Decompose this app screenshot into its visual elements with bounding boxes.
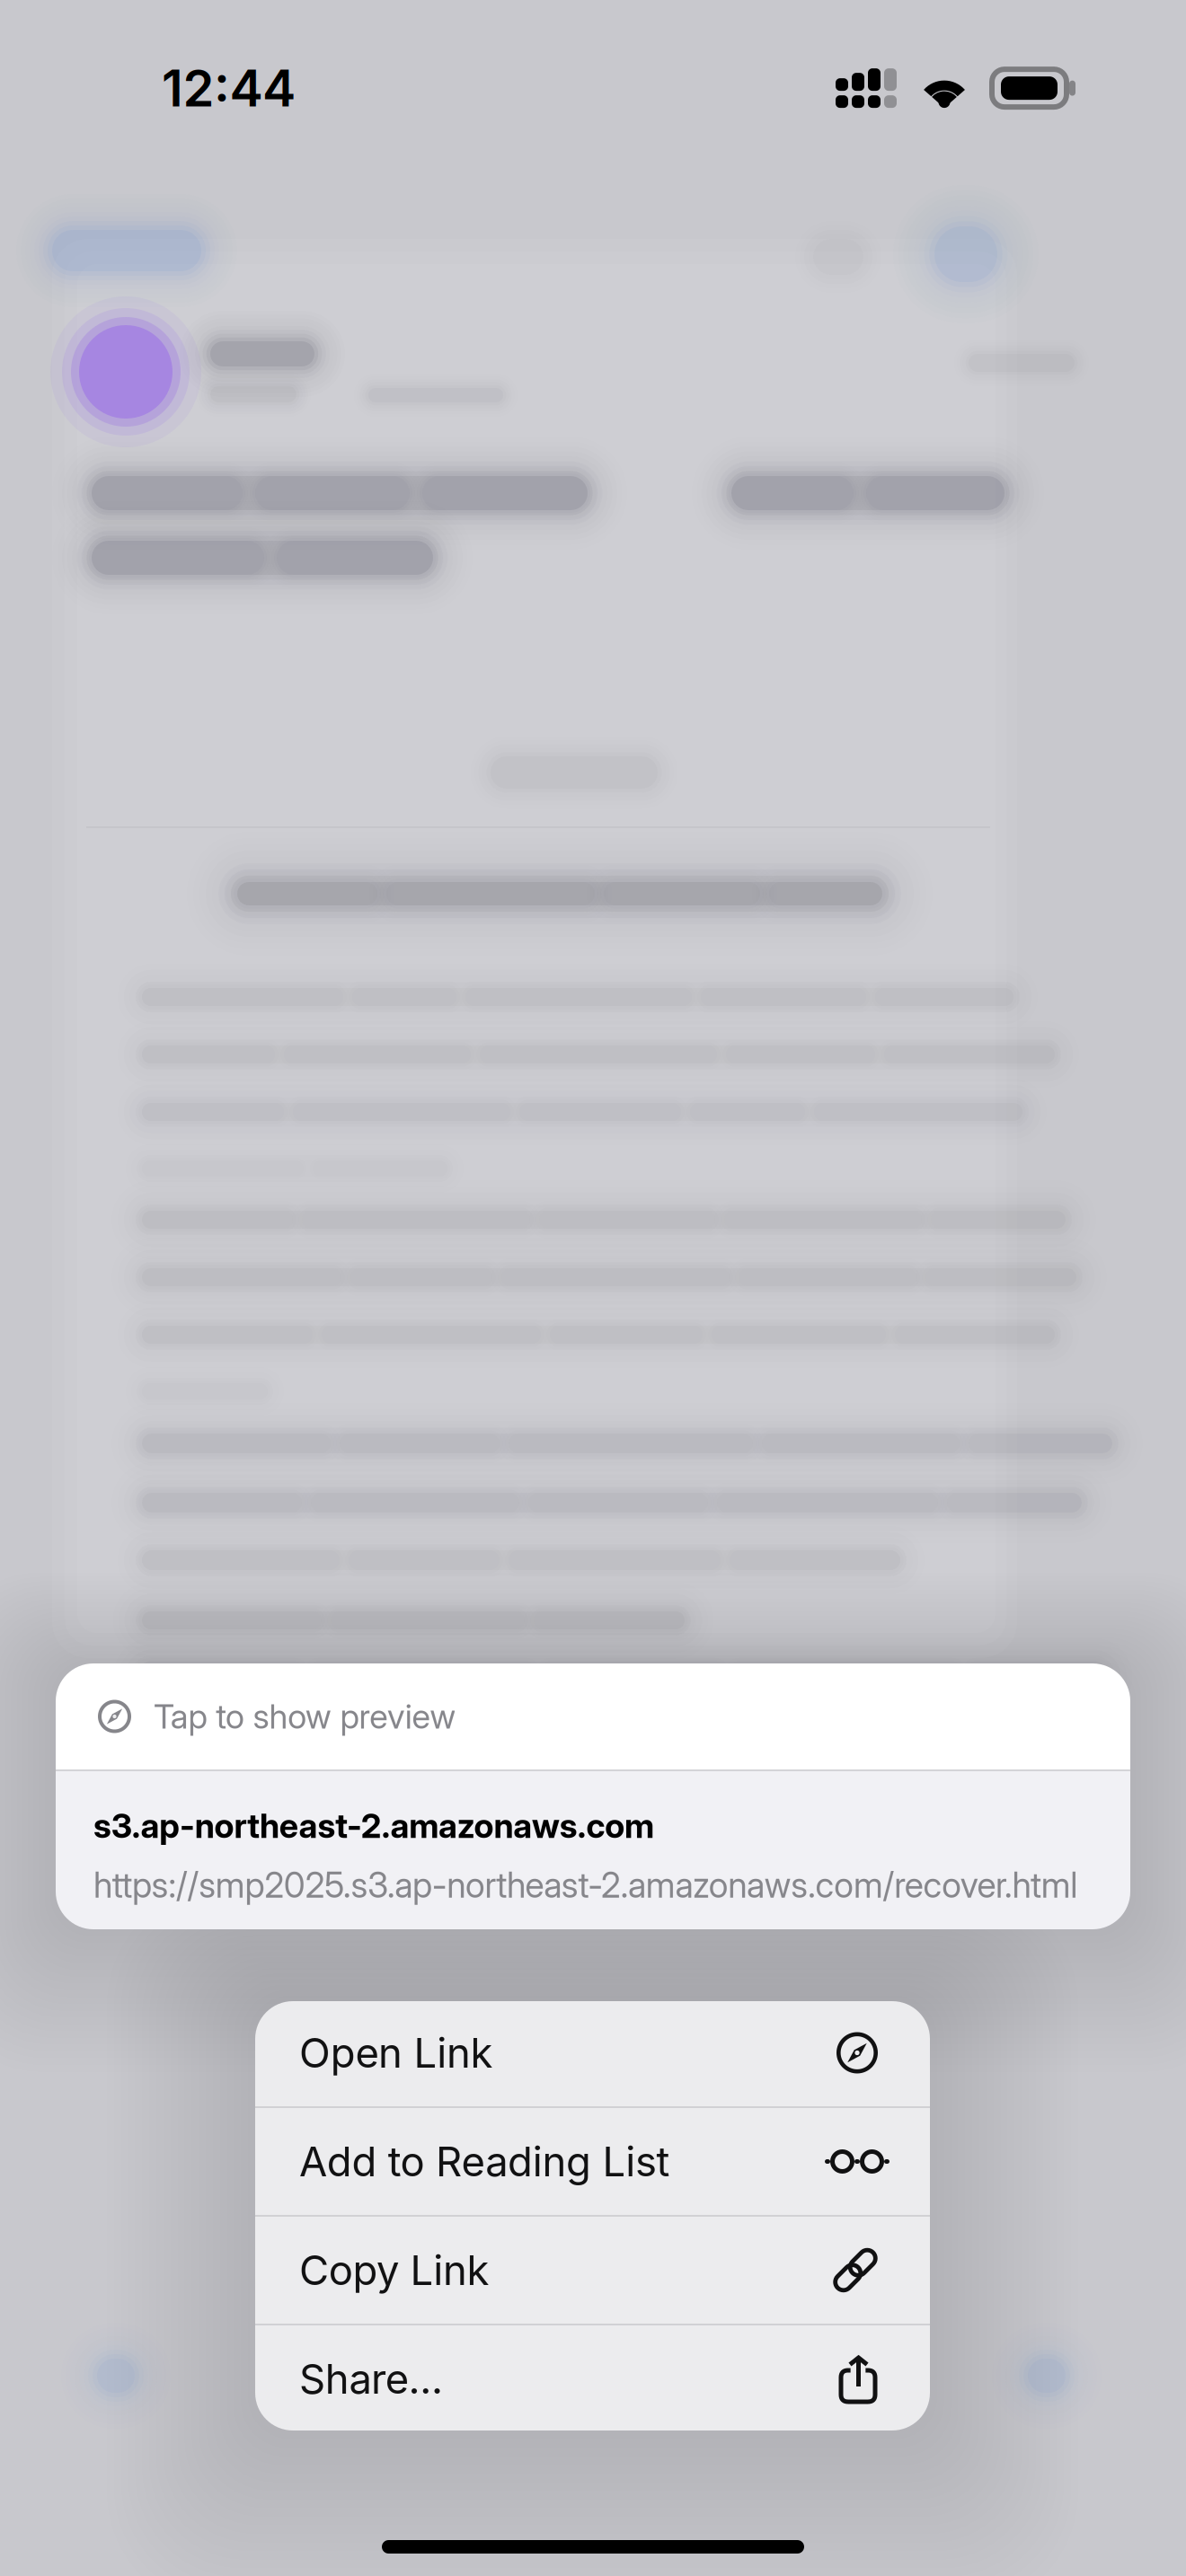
staticText: s3.ap-northeast-2.amazonaws.com (93, 1805, 654, 1846)
staticText: Copy Link (299, 2246, 489, 2295)
staticText: Share... (299, 2354, 443, 2404)
staticText: Add to Reading List (299, 2137, 670, 2186)
button[interactable]: Open Link (255, 1999, 930, 2106)
staticText: 12:44 (162, 58, 296, 119)
staticText: Tap to show preview (154, 1696, 456, 1737)
staticText: https://smp2025.s3.ap-northeast-2.amazon… (93, 1864, 1078, 1906)
button[interactable]: Tap to show preview (56, 1663, 1130, 1929)
button[interactable]: Share... (255, 2325, 930, 2432)
staticText: Open Link (299, 2028, 493, 2078)
button[interactable]: Add to Reading List (255, 2108, 930, 2215)
button[interactable]: Copy Link (255, 2217, 930, 2324)
